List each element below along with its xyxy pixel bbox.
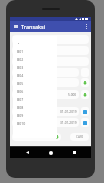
staticText: B03 [17,65,24,70]
staticText: B06 [17,89,24,94]
button[interactable] [12,46,89,55]
staticText: B02 [17,57,24,62]
button[interactable]: Recents [67,147,81,158]
staticText: Transaksi [21,23,46,30]
button[interactable]: B010 [13,119,57,127]
button[interactable]: Pick date [81,107,89,116]
button[interactable] [12,35,89,44]
staticText: 01-01-2019 [60,110,77,114]
button[interactable]: B01 [13,47,57,55]
button[interactable]: B06 [13,87,57,95]
button[interactable] [12,133,61,141]
staticText: B010 [17,121,26,126]
staticText: B01 [17,49,24,54]
button[interactable] [12,68,79,77]
button[interactable]: 31-01-2019 [12,118,79,127]
button[interactable]: Add [81,90,89,99]
button[interactable]: B08 [13,103,57,111]
button[interactable] [12,78,79,87]
button[interactable]: More options [82,21,91,32]
button[interactable]: Add [81,78,89,87]
button[interactable]: B03 [13,63,57,71]
button[interactable]: B09 [13,111,57,119]
button[interactable]: B04 [13,71,57,79]
button[interactable] [12,57,89,66]
staticText: B09 [17,113,24,118]
button[interactable]: 01-01-2019 [12,107,79,116]
staticText: B07 [17,97,24,102]
button[interactable]: Pick date [81,118,89,127]
button[interactable]: CARI [70,133,89,141]
button[interactable]: Home [44,147,58,158]
staticText: B04 [17,73,24,78]
staticText: 31-01-2019 [60,121,77,125]
staticText: 5.000 [68,93,77,97]
button[interactable]: 5.000 [12,90,79,99]
staticText: B08 [17,105,24,110]
button[interactable]: Menu [10,21,21,32]
button[interactable] [13,39,57,47]
button[interactable]: B07 [13,95,57,103]
button[interactable]: B02 [13,55,57,63]
button[interactable]: B05 [13,79,57,87]
staticText: B05 [17,81,24,86]
button[interactable]: Back [20,147,34,158]
staticText: CARI [76,135,84,139]
